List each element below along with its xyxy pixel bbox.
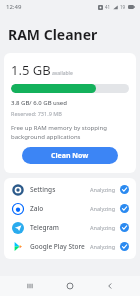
button[interactable]: Settings xyxy=(4,180,136,199)
staticText: Reserved: 731.9 MB xyxy=(11,110,62,117)
staticText: Analyzing xyxy=(90,243,116,250)
staticText: 1.5 GB xyxy=(11,61,51,79)
button[interactable]: Telegram xyxy=(4,218,136,237)
other: Analyzed xyxy=(120,204,129,213)
button[interactable]: Recents xyxy=(20,276,40,296)
staticText: Telegram xyxy=(30,223,90,232)
staticText: 3.8 GB/ 6.0 GB used xyxy=(11,99,67,107)
staticText: Analyzing xyxy=(90,186,116,193)
staticText: RAM Cleaner xyxy=(8,25,98,44)
button[interactable]: Clean Now xyxy=(22,147,118,164)
staticText: Clean Now xyxy=(51,151,89,161)
staticText: 12:49 xyxy=(6,3,22,11)
staticText: Settings xyxy=(30,185,90,194)
staticText: Free up RAM memory by stopping backgroun… xyxy=(11,124,129,140)
button[interactable]: Back xyxy=(100,276,120,296)
button[interactable]: Home xyxy=(60,276,80,296)
staticText: 19 xyxy=(120,4,126,10)
staticText: 41 xyxy=(105,4,111,10)
staticText: Zalo xyxy=(30,204,90,213)
button[interactable]: Zalo xyxy=(4,199,136,218)
button[interactable]: Google Play Store xyxy=(4,237,136,256)
staticText: Analyzing xyxy=(90,224,116,231)
staticText: available xyxy=(52,70,73,77)
staticText: Analyzing xyxy=(90,205,116,212)
staticText: Google Play Store xyxy=(30,242,90,251)
other: Analyzed xyxy=(120,242,129,251)
other: Analyzed xyxy=(120,223,129,232)
other: Analyzed xyxy=(120,185,129,194)
